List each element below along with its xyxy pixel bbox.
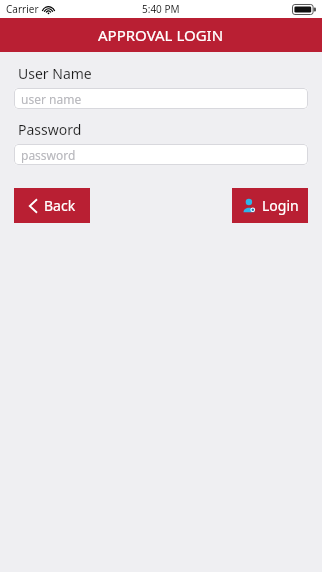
staticText: password xyxy=(21,147,76,163)
staticText: Carrier xyxy=(6,2,39,16)
button[interactable]: password xyxy=(14,144,308,165)
staticText: Login xyxy=(262,196,299,215)
staticText: User Name xyxy=(18,64,92,83)
button[interactable]: Back xyxy=(14,188,90,223)
staticText: 5:40 PM xyxy=(142,2,180,16)
staticText: Back xyxy=(44,196,76,215)
button[interactable]: user name xyxy=(14,88,308,109)
button[interactable]: Login xyxy=(232,188,308,223)
staticText: user name xyxy=(21,91,82,107)
staticText: Password xyxy=(18,120,82,139)
staticText: APPROVAL LOGIN xyxy=(98,25,224,45)
